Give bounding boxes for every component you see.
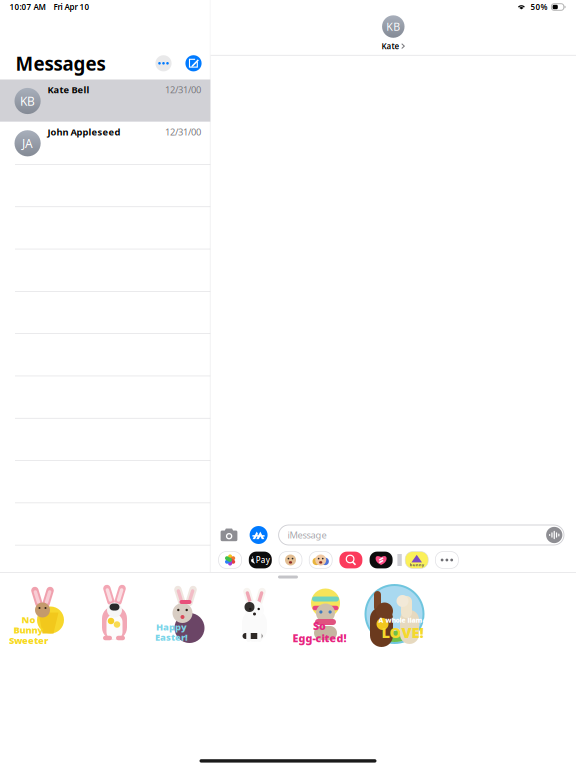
staticText: JA (22, 135, 33, 151)
button[interactable]: Sticker (364, 584, 424, 644)
staticText: bunny (410, 562, 424, 567)
staticText: Kate (381, 41, 399, 51)
staticText: iMessage (288, 529, 327, 541)
button[interactable]: KB (0, 79, 211, 122)
staticText: Easter! (155, 631, 188, 643)
staticText: 12/31/00 (165, 126, 201, 138)
staticText: KB (20, 93, 35, 109)
staticText: 12/31/00 (165, 83, 201, 96)
button[interactable]: Sticker (154, 584, 214, 644)
button[interactable]: Sticker (84, 584, 144, 644)
staticText: KB (386, 19, 400, 34)
staticText: Bunny (13, 624, 43, 636)
button[interactable]: App Store (250, 526, 268, 544)
button[interactable]: Music (370, 552, 393, 568)
staticText: 10:07 AM (9, 2, 45, 12)
button[interactable]: Apple Pay (249, 552, 272, 568)
staticText: Happy (156, 621, 187, 633)
button[interactable]: Images (339, 552, 362, 568)
staticText: Pay (256, 555, 270, 565)
button[interactable]: More (155, 55, 172, 71)
staticText: LOVE! (381, 623, 423, 642)
button[interactable]: Memoji Stickers (309, 552, 332, 568)
staticText: John Appleseed (47, 126, 120, 138)
button[interactable]: Sticker (294, 584, 354, 644)
button[interactable]: Camera (221, 528, 238, 541)
button[interactable]: Sticker Pack (405, 552, 428, 568)
button[interactable]: More Apps (435, 552, 458, 568)
staticText: Egg-cited! (292, 631, 346, 645)
staticText: Messages (15, 51, 105, 76)
button[interactable]: KB (381, 15, 405, 51)
staticText: Sweeter (9, 634, 48, 647)
staticText: No (21, 613, 35, 626)
staticText: So (313, 619, 326, 633)
staticText: Fri Apr 10 (53, 2, 89, 12)
button[interactable]: Sticker (14, 584, 74, 644)
staticText: 50% (530, 2, 547, 12)
button[interactable]: Sticker (224, 584, 284, 644)
button[interactable]: JA (0, 122, 211, 164)
staticText: Kate Bell (47, 83, 89, 96)
button[interactable]: Photos (219, 552, 242, 568)
button[interactable]: New Message (185, 55, 202, 71)
staticText: A whole llama (378, 616, 426, 625)
button[interactable]: Memoji (279, 552, 302, 568)
